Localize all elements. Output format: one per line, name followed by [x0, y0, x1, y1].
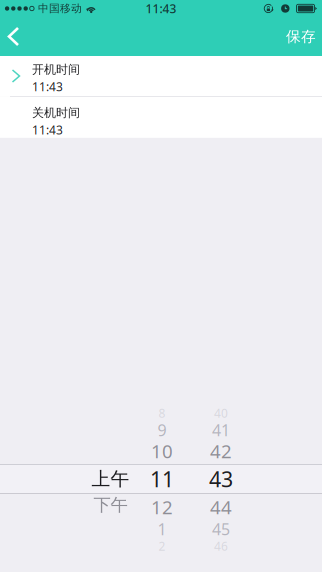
- staticText: 43: [209, 465, 233, 493]
- staticText: 关机时间: [32, 105, 80, 120]
- staticText: 上午: [91, 467, 129, 490]
- button[interactable]: 开机时间: [0, 56, 322, 96]
- staticText: 中国移动: [38, 2, 82, 15]
- staticText: 46: [214, 538, 228, 554]
- button[interactable]: 保存: [278, 17, 322, 56]
- staticText: 45: [212, 518, 230, 540]
- staticText: 10: [151, 439, 173, 463]
- staticText: 11:43: [32, 122, 63, 138]
- staticText: 下午: [93, 494, 127, 516]
- staticText: 1: [157, 518, 166, 540]
- staticText: 2: [158, 538, 165, 554]
- staticText: 11:43: [32, 78, 63, 94]
- staticText: 40: [214, 405, 228, 421]
- staticText: 42: [210, 439, 232, 463]
- button[interactable]: Back: [0, 17, 36, 56]
- staticText: 9: [157, 419, 166, 441]
- staticText: 44: [210, 495, 232, 519]
- staticText: 保存: [286, 27, 316, 45]
- staticText: 11: [150, 465, 174, 493]
- staticText: 8: [158, 405, 165, 421]
- button[interactable]: 关机时间: [0, 97, 322, 138]
- staticText: 11:43: [145, 0, 176, 16]
- staticText: 开机时间: [32, 62, 80, 77]
- staticText: 41: [212, 419, 230, 441]
- staticText: 12: [151, 495, 173, 519]
